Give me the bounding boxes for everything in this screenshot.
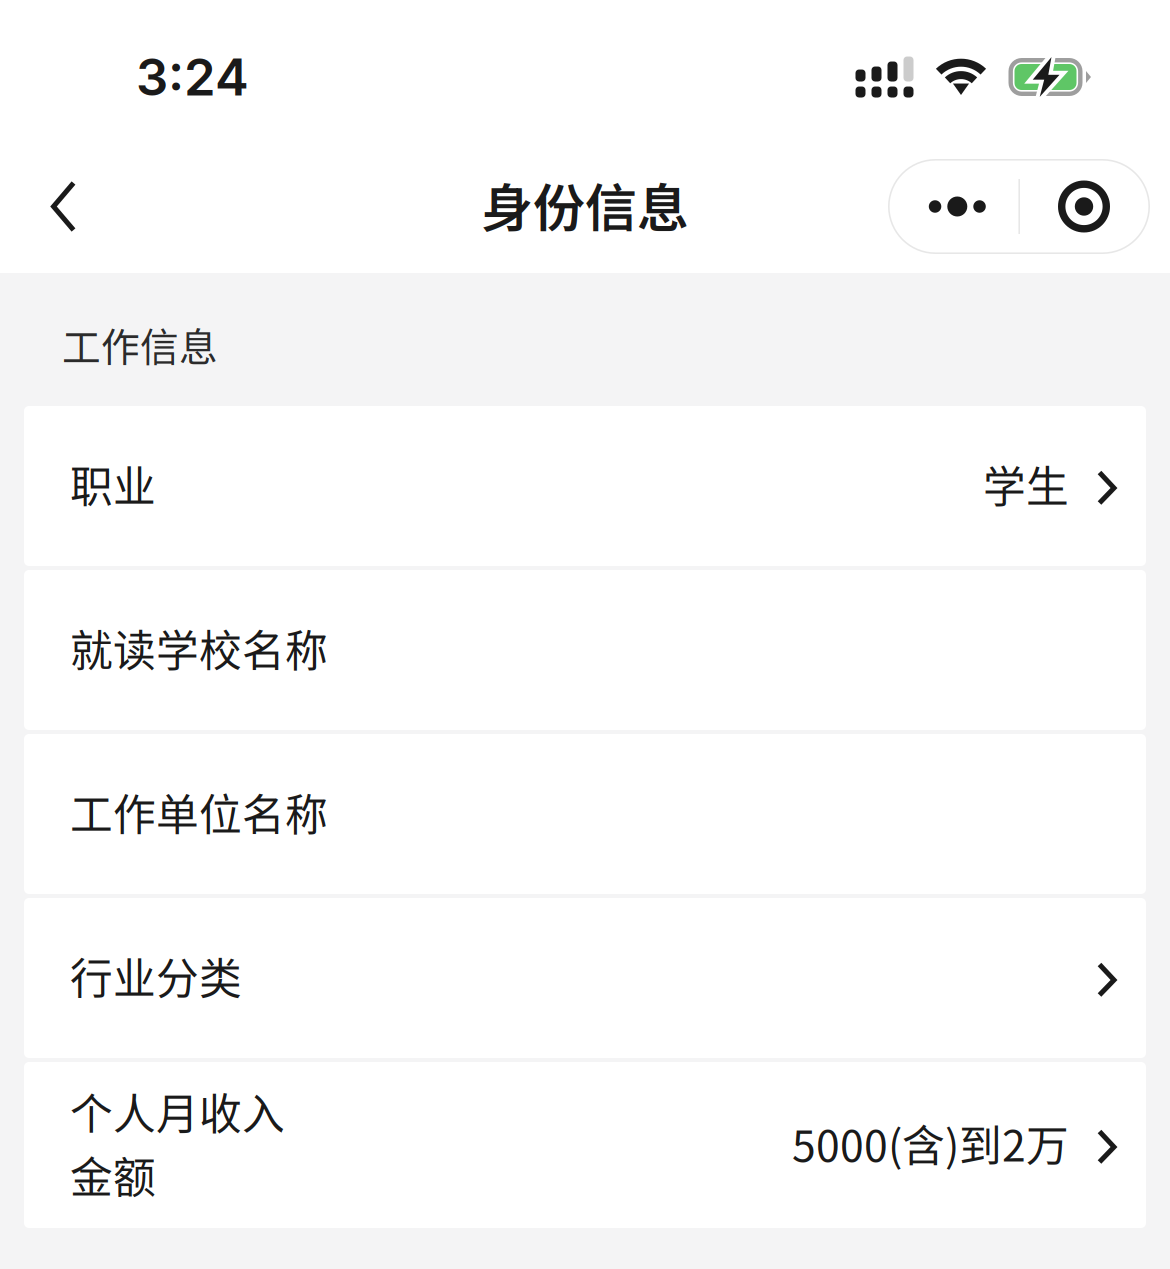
button[interactable]: 工作单位名称	[24, 734, 1146, 894]
staticText: 金额	[70, 1144, 156, 1206]
staticText: 工作单位名称	[70, 781, 328, 843]
button[interactable]: 就读学校名称	[24, 570, 1146, 730]
staticText: 职业	[70, 453, 156, 515]
button[interactable]: 行业分类	[24, 898, 1146, 1058]
staticText: 3:24	[136, 46, 249, 108]
staticText: 5000(含)到2万	[792, 1112, 1069, 1174]
button[interactable]: 返回	[0, 140, 124, 273]
staticText: 就读学校名称	[70, 617, 328, 679]
staticText: 学生	[983, 453, 1069, 515]
staticText: 身份信息	[481, 167, 689, 242]
staticText: 个人月收入	[70, 1080, 285, 1142]
staticText: 行业分类	[70, 945, 242, 1007]
button[interactable]: 个人月收入	[24, 1062, 1146, 1228]
staticText: 工作信息	[62, 316, 218, 372]
button[interactable]: 更多	[888, 159, 1150, 254]
button[interactable]: 职业	[24, 406, 1146, 566]
